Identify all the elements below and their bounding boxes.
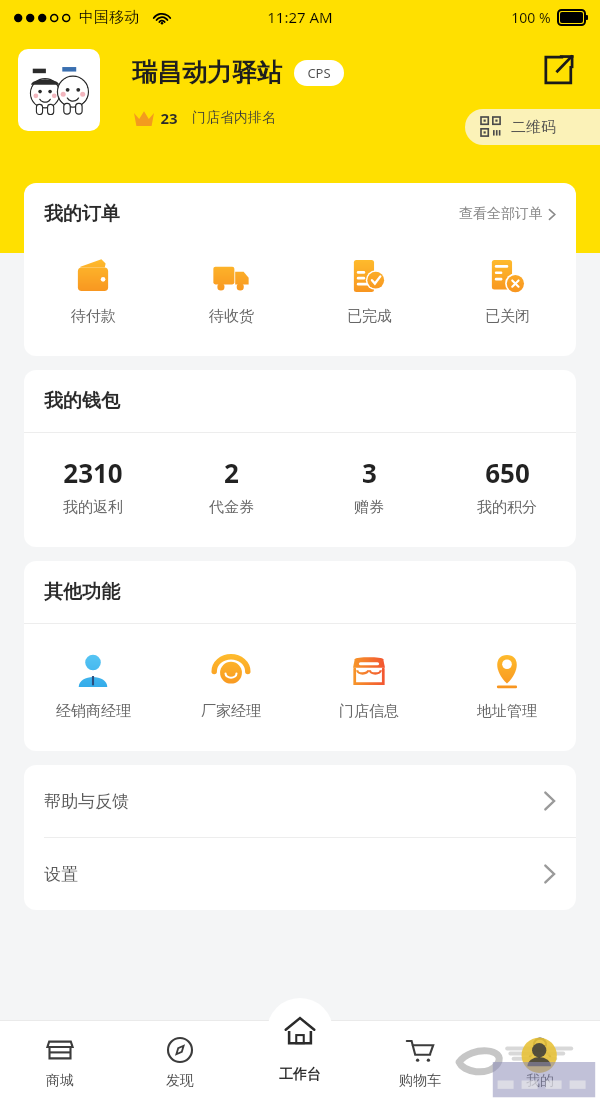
button[interactable]: 经销商经理: [24, 646, 162, 725]
button[interactable]: 商城: [0, 1035, 120, 1090]
staticText: 3: [362, 455, 377, 490]
staticText: 工作台: [279, 1066, 321, 1084]
staticText: 2: [224, 455, 239, 490]
staticText: 查看全部订单: [459, 205, 543, 223]
staticText: 设置: [44, 864, 78, 885]
button[interactable]: Store avatar: [18, 49, 100, 131]
button[interactable]: 工作台: [267, 998, 333, 1094]
button[interactable]: 待付款: [24, 251, 162, 330]
staticText: 帮助与反馈: [44, 791, 129, 812]
staticText: 我的积分: [477, 498, 537, 517]
staticText: 待付款: [71, 307, 116, 326]
staticText: 我的订单: [44, 202, 120, 226]
button[interactable]: 已关闭: [438, 251, 576, 330]
staticText: 其他功能: [44, 580, 120, 604]
button[interactable]: 我的: [480, 1035, 600, 1090]
staticText: 发现: [166, 1072, 194, 1090]
staticText: 商城: [46, 1072, 74, 1090]
button[interactable]: 2310: [24, 455, 162, 517]
staticText: 已完成: [347, 307, 392, 326]
button[interactable]: Share: [538, 50, 578, 90]
button[interactable]: 设置: [24, 838, 576, 910]
button[interactable]: 二维码: [465, 109, 600, 145]
button[interactable]: 已完成: [300, 251, 438, 330]
staticText: 经销商经理: [56, 702, 131, 721]
button[interactable]: 发现: [120, 1035, 240, 1090]
button[interactable]: 购物车: [360, 1035, 480, 1090]
staticText: 11:27 AM: [267, 7, 333, 27]
staticText: 我的返利: [63, 498, 123, 517]
staticText: 购物车: [399, 1072, 441, 1090]
staticText: 我的钱包: [44, 389, 120, 413]
staticText: 二维码: [511, 118, 556, 137]
staticText: 门店信息: [339, 702, 399, 721]
staticText: 650: [485, 455, 530, 490]
staticText: 赠券: [354, 498, 384, 517]
staticText: 我的: [526, 1072, 554, 1090]
button[interactable]: 门店信息: [300, 646, 438, 725]
staticText: 代金券: [209, 498, 254, 517]
button[interactable]: 3: [300, 455, 438, 517]
staticText: CPS: [307, 64, 331, 82]
staticText: 地址管理: [477, 702, 537, 721]
staticText: 中国移动: [79, 8, 139, 27]
button[interactable]: 我的订单: [24, 183, 576, 245]
button[interactable]: 2: [162, 455, 300, 517]
staticText: 2310: [63, 455, 123, 490]
staticText: 待收货: [209, 307, 254, 326]
button[interactable]: 帮助与反馈: [24, 765, 576, 837]
staticText: 厂家经理: [201, 702, 261, 721]
staticText: 23: [160, 108, 178, 128]
button[interactable]: CPS: [294, 60, 344, 86]
button[interactable]: 厂家经理: [162, 646, 300, 725]
button[interactable]: 650: [438, 455, 576, 517]
staticText: 已关闭: [485, 307, 530, 326]
staticText: 门店省内排名: [192, 109, 276, 127]
staticText: 100 %: [511, 8, 551, 27]
staticText: 瑞昌动力驿站: [132, 57, 282, 88]
button[interactable]: 待收货: [162, 251, 300, 330]
button[interactable]: 地址管理: [438, 646, 576, 725]
